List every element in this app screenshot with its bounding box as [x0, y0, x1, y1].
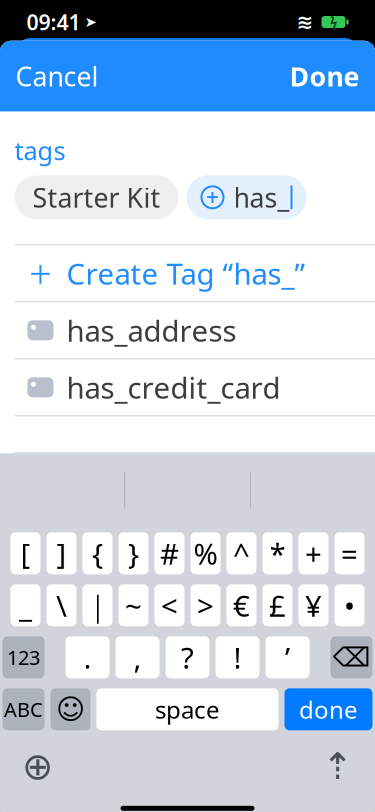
staticText: ! — [233, 638, 241, 677]
button[interactable]: • — [334, 584, 364, 626]
staticText: * — [269, 534, 285, 573]
staticText: _ — [19, 586, 32, 625]
staticText: 123 — [7, 644, 40, 671]
button[interactable]: ! — [215, 636, 259, 678]
button[interactable]: < — [154, 584, 184, 626]
staticText: Starter Kit — [32, 180, 160, 215]
staticText: % — [193, 534, 217, 573]
staticText: ^ — [233, 534, 250, 573]
button[interactable]: space — [96, 688, 278, 730]
button[interactable]: { — [82, 532, 112, 574]
staticText: > — [197, 586, 214, 625]
staticText: { — [92, 534, 103, 573]
button[interactable]: ~ — [118, 584, 148, 626]
button[interactable]: Done — [285, 52, 363, 100]
staticText: . — [83, 638, 91, 677]
button[interactable]: has_credit_card — [0, 359, 375, 415]
staticText: ’ — [285, 638, 290, 677]
staticText: < — [161, 586, 178, 625]
button[interactable]: ’ — [265, 636, 309, 678]
button[interactable]: ? — [165, 636, 209, 678]
button[interactable]: € — [226, 584, 256, 626]
button[interactable]: [ — [10, 532, 40, 574]
staticText: has_address — [66, 311, 236, 350]
button[interactable]: } — [118, 532, 148, 574]
staticText: , — [133, 638, 141, 677]
staticText: ⊕ — [22, 745, 53, 787]
button[interactable]: Cancel — [11, 52, 102, 100]
button[interactable]: _ — [10, 584, 40, 626]
staticText: has_ — [233, 180, 289, 215]
staticText: | — [89, 586, 105, 625]
button[interactable]: Delete — [330, 636, 372, 678]
button[interactable]: ] — [46, 532, 76, 574]
button[interactable]: Dictation — [317, 746, 357, 786]
staticText: \ — [56, 586, 67, 625]
staticText: ⇡ — [322, 745, 353, 787]
button[interactable]: , — [115, 636, 159, 678]
staticText: ABC — [4, 696, 43, 723]
staticText: ] — [56, 534, 66, 573]
staticText: done — [299, 693, 358, 725]
staticText: } — [128, 534, 139, 573]
staticText: # — [160, 534, 179, 573]
staticText: has_credit_card — [66, 368, 280, 407]
staticText: ? — [181, 638, 194, 677]
staticText: + — [305, 534, 322, 573]
button[interactable]: done — [284, 688, 372, 730]
staticText: ϟ — [330, 13, 337, 31]
staticText: space — [155, 693, 220, 725]
button[interactable]: + — [298, 532, 328, 574]
staticText: ~ — [125, 586, 142, 625]
button[interactable]: > — [190, 584, 220, 626]
button[interactable]: * — [262, 532, 292, 574]
staticText: £ — [269, 586, 286, 625]
button[interactable]: Emoji — [50, 688, 90, 730]
staticText: € — [233, 586, 250, 625]
staticText: ⌫ — [332, 642, 370, 672]
staticText: 09:41 — [26, 8, 80, 36]
staticText: = — [341, 534, 358, 573]
button[interactable]: % — [190, 532, 220, 574]
staticText: Done — [289, 58, 359, 94]
staticText: ☺ — [56, 693, 85, 725]
staticText: + — [29, 247, 52, 300]
button[interactable]: Change keyboard — [17, 746, 57, 786]
staticText: • — [344, 586, 355, 625]
button[interactable]: + — [186, 175, 306, 219]
button[interactable]: . — [65, 636, 109, 678]
staticText: tags — [14, 134, 65, 167]
staticText: Cancel — [15, 58, 98, 94]
staticText: ➤ — [84, 14, 96, 30]
button[interactable]: + — [0, 245, 375, 301]
staticText: ¥ — [305, 586, 322, 625]
button[interactable]: 123 — [2, 636, 44, 678]
button[interactable]: Starter Kit — [14, 175, 178, 219]
staticText: [ — [20, 534, 30, 573]
staticText: + — [206, 182, 219, 212]
button[interactable]: # — [154, 532, 184, 574]
button[interactable]: £ — [262, 584, 292, 626]
button[interactable]: \ — [46, 584, 76, 626]
button[interactable]: ¥ — [298, 584, 328, 626]
staticText: Create Tag “has_” — [66, 254, 305, 293]
button[interactable]: | — [82, 584, 112, 626]
button[interactable]: has_address — [0, 302, 375, 358]
button[interactable]: ABC — [2, 688, 44, 730]
button[interactable]: ^ — [226, 532, 256, 574]
button[interactable]: = — [334, 532, 364, 574]
staticText: ≋ — [296, 11, 313, 33]
